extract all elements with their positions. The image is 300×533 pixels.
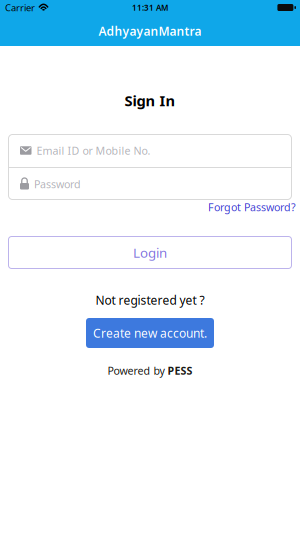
staticText: AdhyayanMantra	[98, 23, 201, 39]
button[interactable]: Password	[8, 168, 292, 200]
staticText: Password	[34, 177, 81, 191]
staticText: Email ID or Mobile No.	[36, 143, 150, 158]
button[interactable]: Forgot Password?	[208, 201, 296, 213]
button[interactable]: Email ID or Mobile No.	[8, 134, 292, 167]
staticText: Create new account.	[93, 325, 207, 341]
staticText: Carrier	[5, 1, 35, 14]
staticText: Sign In	[124, 91, 175, 110]
staticText: Login	[133, 244, 167, 261]
staticText: 11:31 AM	[132, 2, 168, 13]
button[interactable]: Login	[8, 236, 292, 269]
staticText: Forgot Password?	[208, 200, 296, 214]
button[interactable]: Create new account.	[86, 318, 214, 348]
staticText: Powered by PESS	[107, 363, 192, 378]
staticText: Not registered yet ?	[95, 292, 204, 308]
